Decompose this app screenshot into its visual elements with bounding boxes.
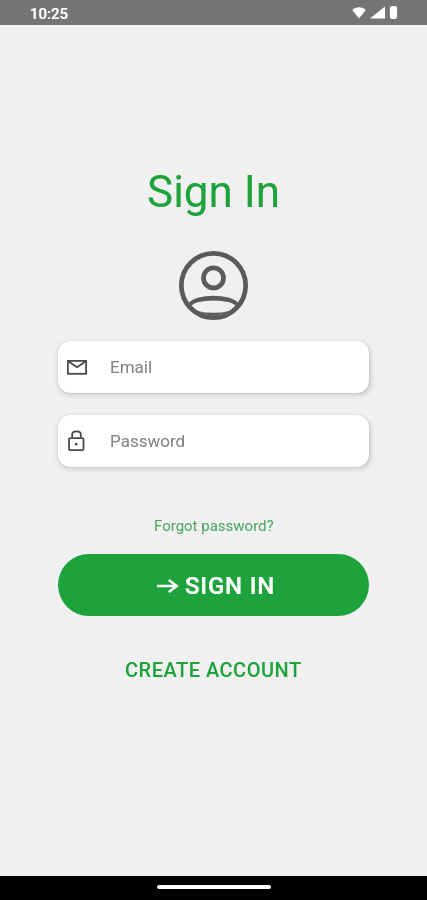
staticText: Sign In (147, 166, 281, 218)
button[interactable]: SIGN IN (58, 554, 369, 616)
button[interactable]: Forgot password? (146, 514, 282, 538)
staticText: CREATE ACCOUNT (125, 658, 302, 681)
button[interactable]: Password (58, 415, 369, 467)
staticText: SIGN IN (185, 572, 276, 600)
staticText: 10:25 (30, 5, 69, 23)
button[interactable]: Email (58, 341, 369, 393)
button[interactable]: CREATE ACCOUNT (113, 652, 314, 687)
other: Account (179, 251, 248, 320)
staticText: Password (110, 431, 186, 451)
staticText: Forgot password? (154, 517, 274, 535)
staticText: Email (110, 357, 153, 377)
